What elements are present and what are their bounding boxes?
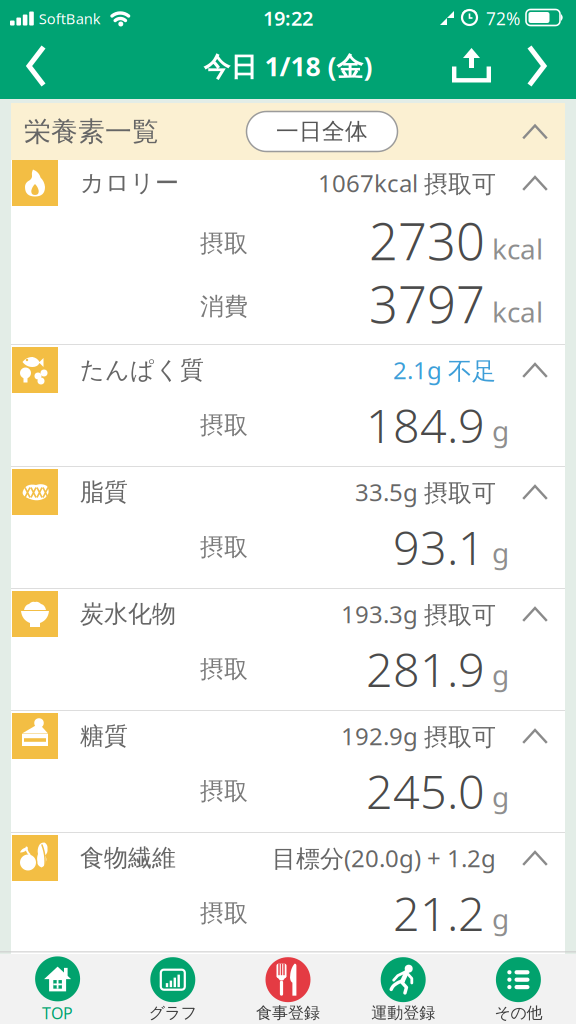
button[interactable]: 食物繊維 <box>11 835 565 881</box>
staticText: kcal <box>492 230 543 267</box>
staticText: 2.1g 不足 <box>393 354 496 386</box>
button[interactable]: 糖質 <box>11 713 565 759</box>
staticText: 3797 <box>369 270 485 337</box>
staticText: g <box>492 656 509 693</box>
staticText: 摂取 <box>200 229 248 258</box>
staticText: g <box>492 778 509 815</box>
staticText: 今日 1/18 (金) <box>203 48 372 84</box>
button[interactable]: グラフ <box>115 953 230 1024</box>
staticText: 食事登録 <box>256 1003 320 1023</box>
staticText: g <box>492 900 509 937</box>
button[interactable]: その他 <box>461 953 576 1024</box>
staticText: 19:22 <box>263 5 313 31</box>
staticText: 33.5g 摂取可 <box>355 476 496 508</box>
staticText: 目標分(20.0g) + 1.2g <box>272 842 496 874</box>
staticText: 281.9 <box>366 638 485 700</box>
staticText: 21.2 <box>393 882 485 944</box>
staticText: 栄養素一覧 <box>24 115 159 148</box>
staticText: 93.1 <box>393 516 485 578</box>
staticText: 食物繊維 <box>80 843 176 873</box>
button[interactable]: 次の日 <box>491 33 576 99</box>
staticText: 184.9 <box>366 394 485 456</box>
staticText: 炭水化物 <box>80 599 176 629</box>
staticText: 摂取 <box>200 776 248 806</box>
staticText: kcal <box>492 293 543 330</box>
staticText: 摂取 <box>200 898 248 928</box>
staticText: 2730 <box>369 207 485 274</box>
staticText: 72% <box>486 7 520 30</box>
button[interactable]: 共有 <box>452 35 491 96</box>
staticText: SoftBank <box>39 9 101 28</box>
staticText: g <box>492 534 509 571</box>
staticText: 1067kcal 摂取可 <box>318 167 496 199</box>
staticText: 192.9g 摂取可 <box>341 720 496 752</box>
button[interactable]: 一日全体 <box>246 111 397 151</box>
staticText: g <box>492 412 509 449</box>
button[interactable]: 脂質 <box>11 469 565 515</box>
button[interactable]: TOP <box>0 952 115 1024</box>
staticText: 一日全体 <box>276 118 368 145</box>
button[interactable]: 前の日 <box>0 33 44 99</box>
staticText: その他 <box>494 1003 542 1023</box>
button[interactable]: カロリー <box>11 160 565 206</box>
staticText: 運動登録 <box>371 1003 435 1023</box>
staticText: 245.0 <box>366 760 485 822</box>
staticText: 摂取 <box>200 654 248 684</box>
staticText: 糖質 <box>80 721 128 751</box>
button[interactable]: 食事登録 <box>230 953 346 1024</box>
button[interactable]: 炭水化物 <box>11 591 565 637</box>
staticText: 193.3g 摂取可 <box>341 598 496 630</box>
staticText: TOP <box>42 1002 73 1024</box>
staticText: 消費 <box>200 292 248 321</box>
staticText: 摂取 <box>200 410 248 440</box>
button[interactable]: 栄養素一覧 <box>11 103 565 160</box>
staticText: 脂質 <box>80 477 128 507</box>
button[interactable]: たんぱく質 <box>11 347 565 393</box>
staticText: カロリー <box>80 168 179 198</box>
button[interactable]: 運動登録 <box>346 953 461 1024</box>
staticText: 摂取 <box>200 532 248 562</box>
staticText: たんぱく質 <box>80 355 204 385</box>
staticText: グラフ <box>149 1003 197 1023</box>
